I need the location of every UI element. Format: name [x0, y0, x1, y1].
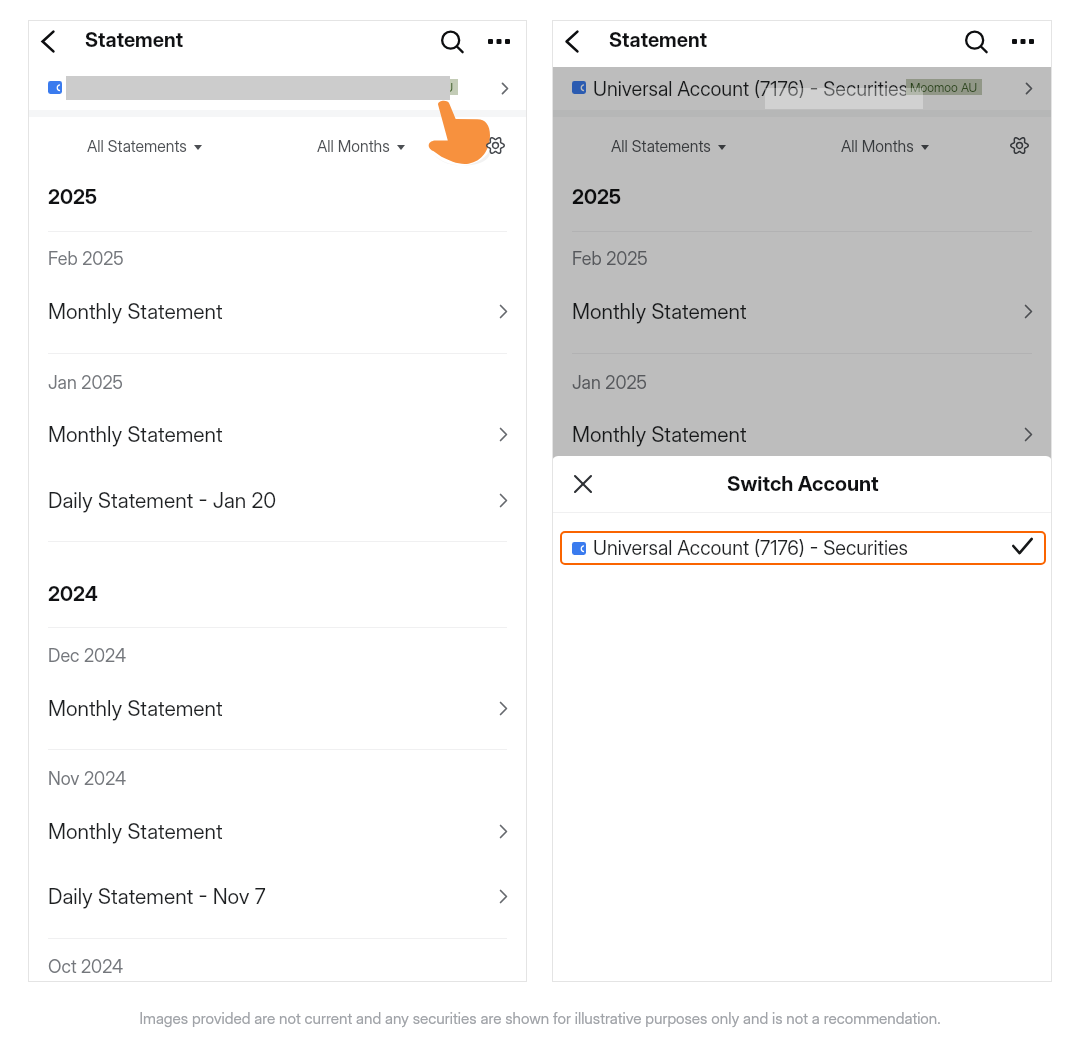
staticText: Statement: [609, 28, 708, 52]
button[interactable]: Settings: [480, 130, 510, 160]
staticText: All Months: [841, 137, 914, 156]
button[interactable]: Monthly Statement: [28, 419, 527, 449]
staticText: Feb 2025: [48, 248, 124, 270]
staticText: All Months: [317, 137, 390, 156]
button[interactable]: Search: [438, 28, 466, 56]
button[interactable]: Back: [31, 24, 65, 58]
button[interactable]: All Months: [317, 135, 405, 157]
staticText: Statement: [85, 28, 184, 52]
staticText: 2025: [572, 185, 621, 209]
staticText: Nov 2024: [48, 768, 127, 790]
button[interactable]: Daily Statement - Nov 7: [28, 881, 527, 911]
button[interactable]: Monthly Statement: [552, 419, 1052, 449]
staticText: Switch Account: [727, 471, 879, 496]
staticText: Monthly Statement: [48, 299, 223, 324]
staticText: 2025: [48, 185, 97, 209]
button[interactable]: All Statements: [87, 135, 202, 157]
staticText: Oct 2024: [48, 956, 124, 978]
button[interactable]: Back: [555, 24, 589, 58]
staticText: Monthly Statement: [572, 299, 747, 324]
button[interactable]: Universal Account (7176) - Securities: [560, 531, 1046, 565]
button[interactable]: All Statements: [611, 135, 726, 157]
staticText: Jan 2025: [48, 372, 123, 394]
button[interactable]: More options: [1009, 27, 1037, 55]
staticText: Moomoo AU: [910, 80, 978, 95]
button[interactable]: Monthly Statement: [28, 296, 527, 326]
staticText: Universal Account (7176) - Securities: [593, 77, 909, 101]
staticText: Daily Statement - Nov 7: [48, 884, 266, 909]
button[interactable]: Daily Statement - Jan 20: [552, 485, 1052, 515]
staticText: Monthly Statement: [48, 819, 223, 844]
button[interactable]: Settings: [1004, 130, 1034, 160]
button[interactable]: Monthly Statement: [28, 693, 527, 723]
button[interactable]: Daily Statement - Jan 20: [28, 485, 527, 515]
staticText: All Statements: [87, 137, 187, 156]
staticText: Jan 2025: [572, 372, 647, 394]
button[interactable]: All Months: [841, 135, 929, 157]
staticText: Daily Statement - Jan 20: [572, 488, 801, 513]
button[interactable]: Universal Account (7176) - Securities: [552, 67, 1052, 110]
staticText: Universal Account (7176) - Securities: [593, 536, 909, 560]
staticText: Universal Account (7176) - Securities: [69, 77, 385, 101]
button[interactable]: Monthly Statement: [552, 296, 1052, 326]
staticText: Monthly Statement: [572, 422, 747, 447]
button[interactable]: Close: [566, 467, 599, 500]
staticText: Feb 2025: [572, 248, 648, 270]
staticText: Moomoo AU: [386, 80, 454, 95]
button[interactable]: More options: [485, 27, 513, 55]
staticText: Monthly Statement: [48, 696, 223, 721]
staticText: Dec 2024: [48, 645, 127, 667]
button[interactable]: Universal Account (7176) - Securities: [28, 67, 527, 110]
button[interactable]: Search: [962, 28, 990, 56]
staticText: All Statements: [611, 137, 711, 156]
button[interactable]: Monthly Statement: [28, 816, 527, 846]
staticText: Monthly Statement: [48, 422, 223, 447]
staticText: Daily Statement - Jan 20: [48, 488, 277, 513]
staticText: 2024: [48, 582, 98, 606]
staticText: Images provided are not current and any …: [139, 1009, 941, 1028]
